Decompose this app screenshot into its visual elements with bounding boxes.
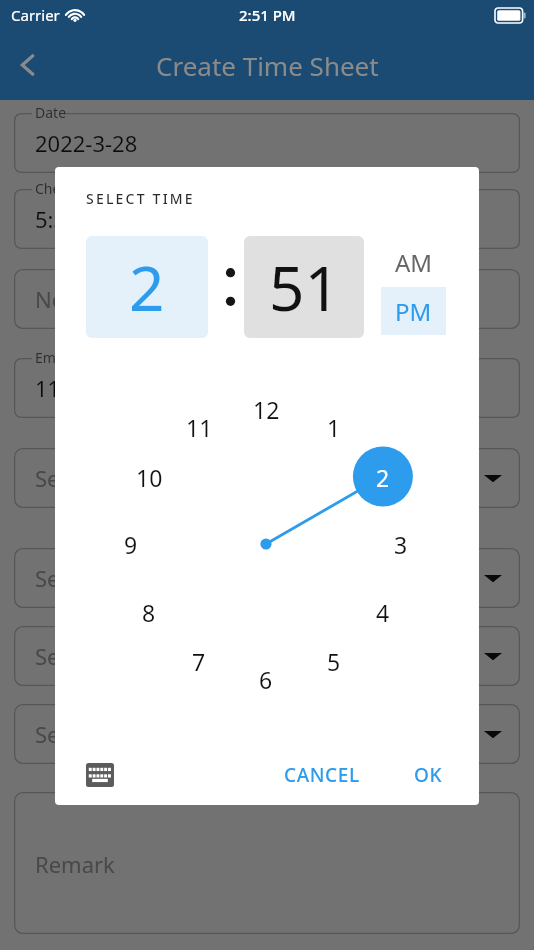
staticText: Note [35, 284, 86, 314]
staticText: Select Project [35, 463, 174, 493]
button[interactable]: Note [14, 269, 520, 329]
staticText: Employee [35, 348, 100, 367]
staticText: 2:51 PM [239, 5, 296, 25]
staticText: 2 [129, 245, 165, 329]
staticText: 11 [35, 373, 61, 403]
button[interactable]: 7 [177, 639, 221, 683]
button[interactable] [14, 792, 520, 934]
button[interactable]: 51 [244, 236, 364, 338]
staticText: Date [35, 103, 67, 122]
button[interactable]: 8 [127, 590, 171, 634]
button[interactable]: 10 [127, 455, 171, 499]
button[interactable]: CANCEL [274, 753, 370, 797]
staticText: CANCEL [284, 762, 360, 788]
staticText: SELECT TIME [86, 189, 195, 208]
staticText: 2022-3-28 [35, 128, 138, 158]
button[interactable]: Employee [14, 358, 520, 418]
button[interactable]: OK [400, 753, 457, 797]
button[interactable]: 2 [86, 236, 208, 338]
staticText: Check In Time [35, 179, 128, 198]
staticText: Create Time Sheet [156, 48, 379, 83]
button[interactable]: Date [14, 113, 520, 173]
staticText: 11 [186, 412, 213, 443]
button[interactable]: Select Status [14, 704, 520, 764]
button[interactable]: AM [381, 239, 446, 285]
staticText: Carrier [11, 5, 60, 25]
button[interactable]: 6 [244, 657, 288, 701]
staticText: 9 [124, 529, 138, 560]
button[interactable]: Switch to keyboard input [86, 763, 114, 787]
button[interactable]: 9 [109, 522, 153, 566]
button[interactable]: 1 [312, 405, 356, 449]
staticText: 1 [327, 412, 341, 443]
staticText: OK [414, 762, 443, 788]
button[interactable]: Back [0, 37, 56, 93]
button[interactable]: 5 [312, 639, 356, 683]
staticText: Select Status [35, 719, 167, 749]
button[interactable]: PM [381, 287, 446, 335]
staticText: 6 [259, 664, 273, 695]
button[interactable]: 2 [361, 455, 405, 499]
staticText: 4 [376, 597, 390, 628]
button[interactable]: Check In Time [14, 189, 520, 249]
staticText: PM [395, 295, 432, 328]
button[interactable]: 12 [244, 387, 288, 431]
staticText: 7 [192, 646, 206, 677]
staticText: 12 [253, 394, 280, 425]
button[interactable]: 11 [177, 405, 221, 449]
staticText: 51 [269, 245, 340, 329]
button[interactable]: 4 [361, 590, 405, 634]
button[interactable]: Select Type [14, 626, 520, 686]
staticText: Select Type [35, 641, 151, 671]
staticText: 8 [142, 597, 156, 628]
staticText: AM [395, 246, 433, 279]
staticText: 5:30 PM [35, 204, 118, 234]
button[interactable]: 3 [379, 522, 423, 566]
staticText: 3 [394, 529, 408, 560]
staticText: Select Task [35, 563, 147, 593]
button[interactable]: Select Task [14, 548, 520, 608]
staticText: 10 [136, 462, 163, 493]
staticText: Remark [35, 849, 115, 879]
staticText: 2 [376, 462, 390, 493]
button[interactable]: Select Project [14, 448, 520, 508]
staticText: 5 [327, 646, 341, 677]
